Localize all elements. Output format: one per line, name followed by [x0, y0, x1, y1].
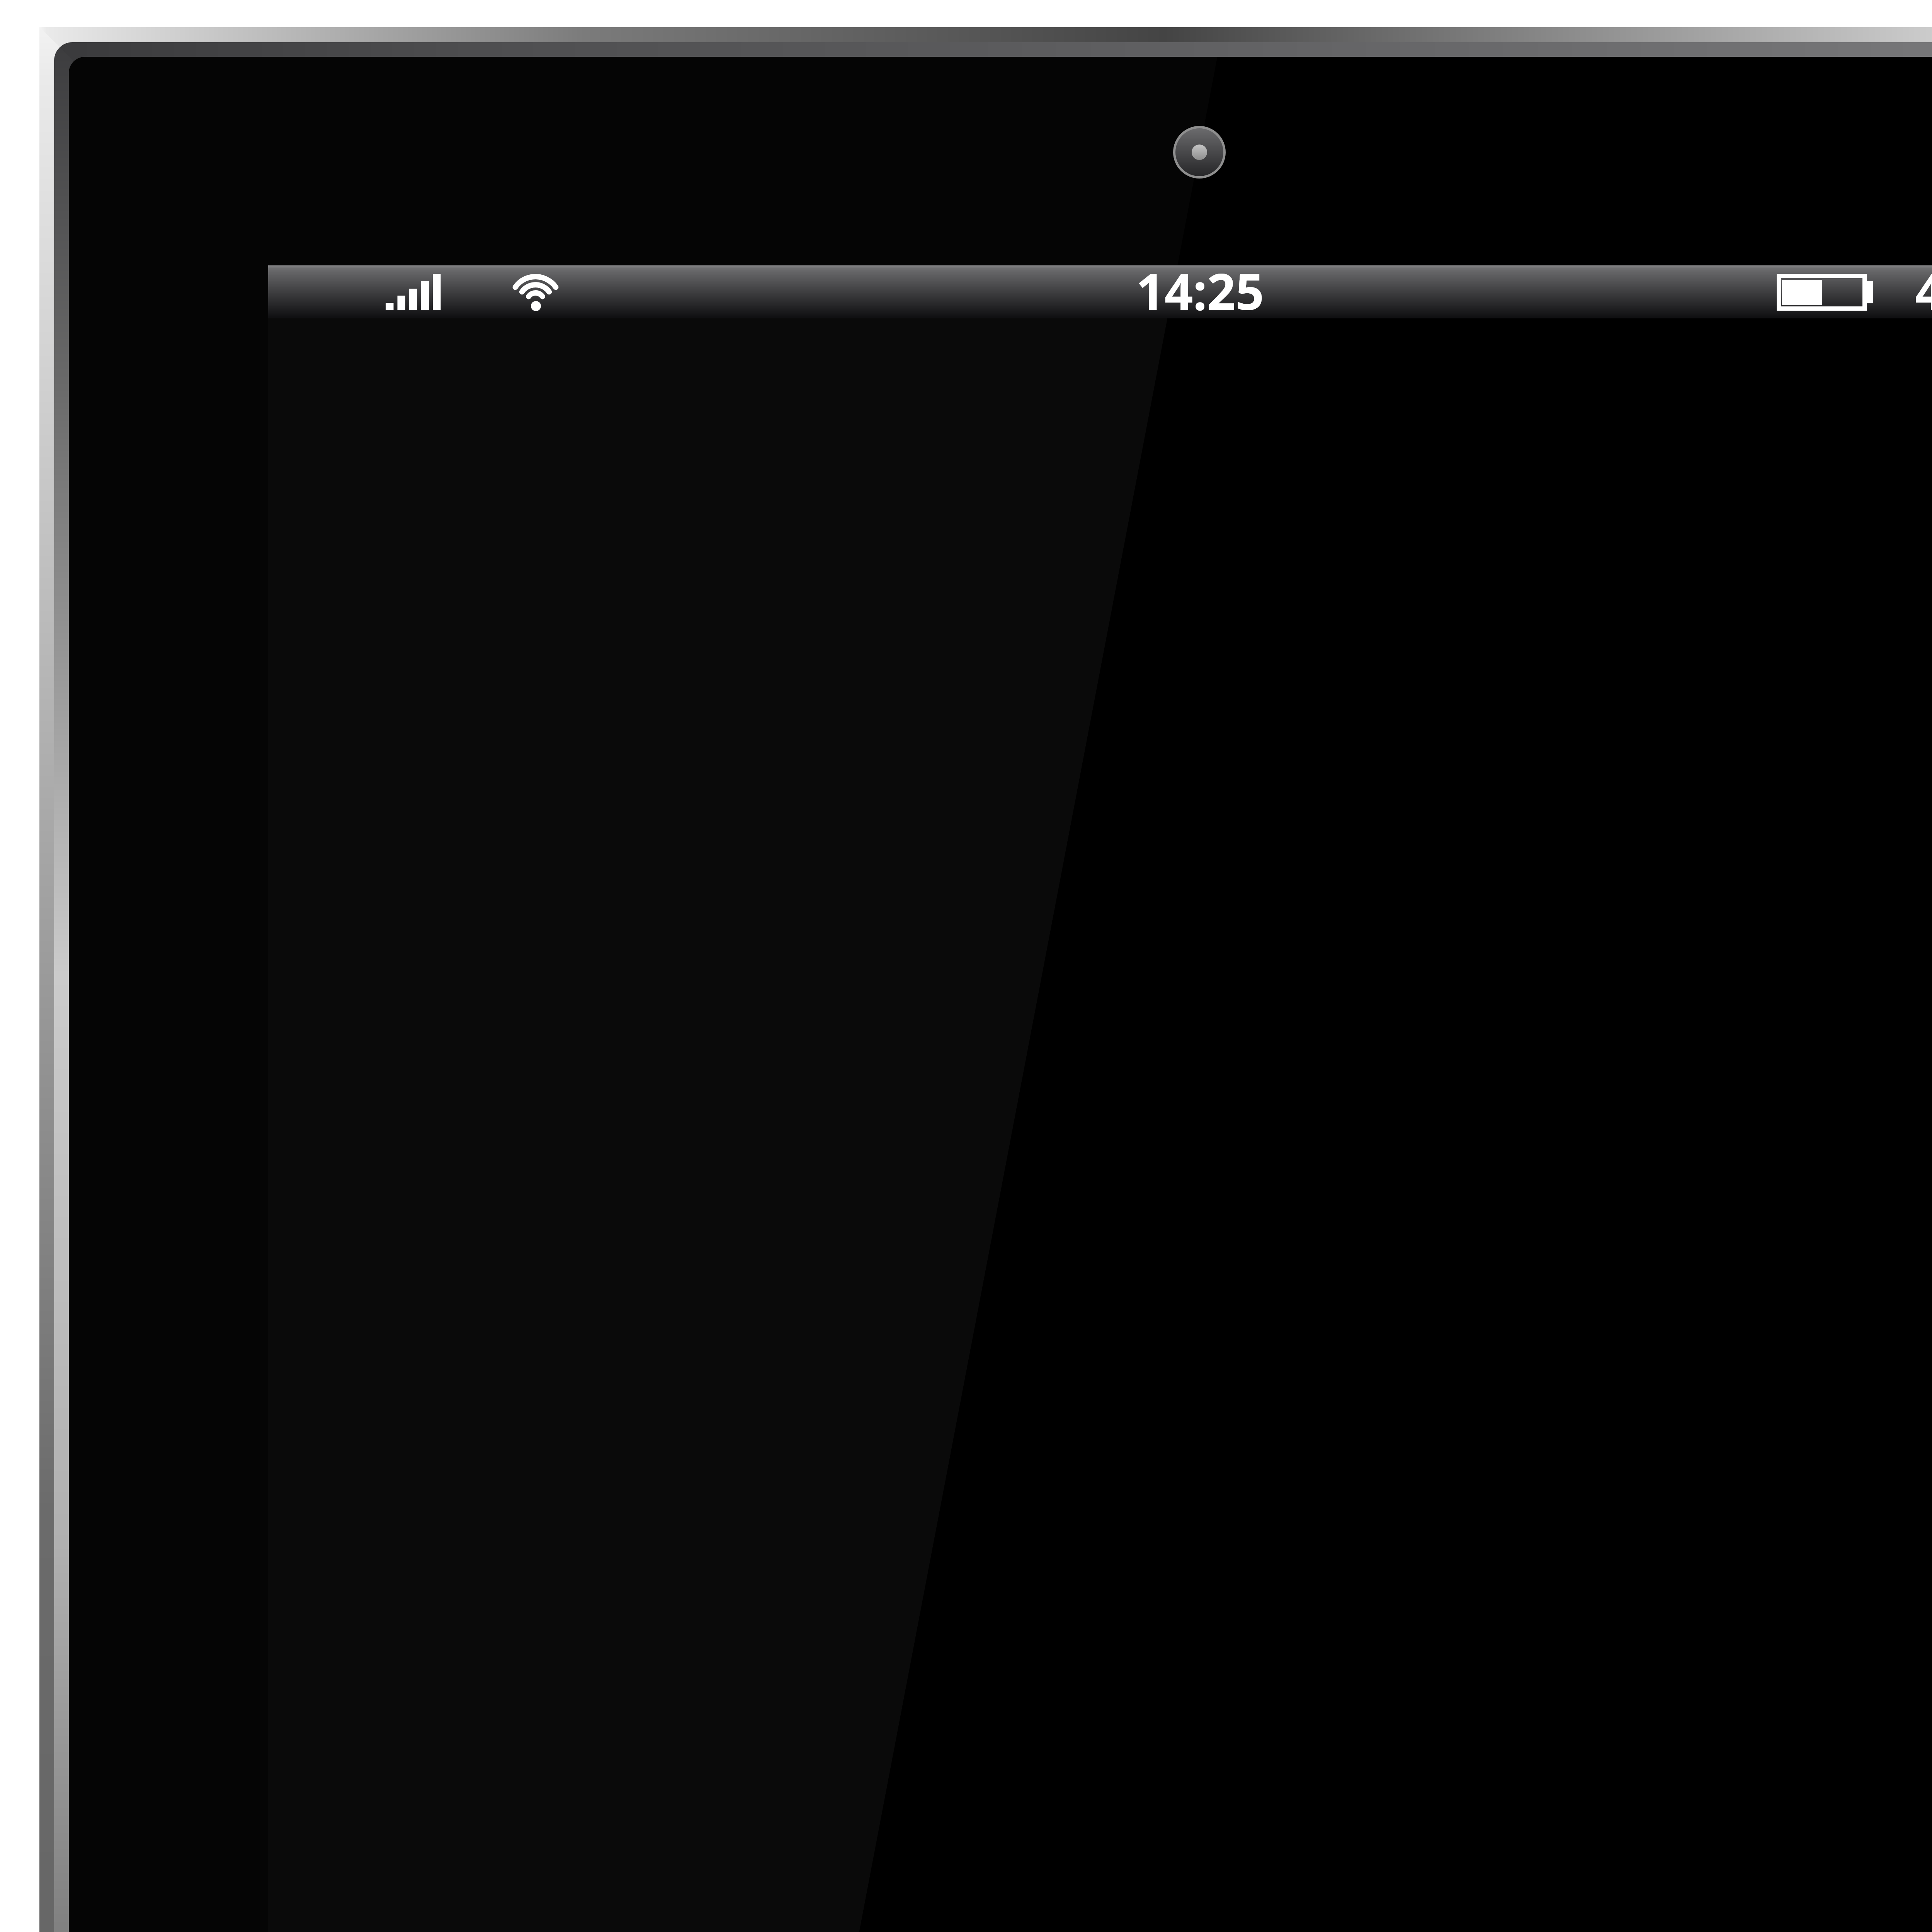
staticText: 14:25: [1136, 257, 1264, 325]
staticText: 40%: [1915, 257, 1932, 325]
